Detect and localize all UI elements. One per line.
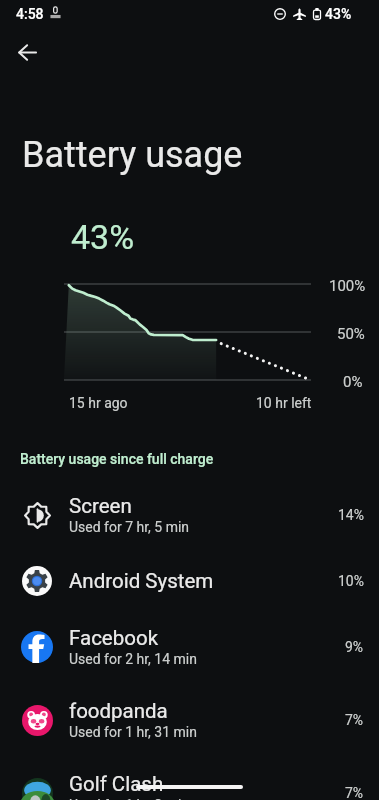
- staticText: 4:58: [16, 6, 44, 22]
- staticText: 43%: [71, 217, 135, 257]
- button[interactable]: foodpanda: [0, 683, 379, 756]
- staticText: 43%: [325, 6, 352, 22]
- staticText: Used for 1 hr, 2 min: [69, 797, 190, 800]
- staticText: 10%: [338, 573, 364, 589]
- staticText: Used for 7 hr, 5 min: [69, 519, 190, 535]
- staticText: 0%: [343, 373, 363, 391]
- button[interactable]: Facebook: [0, 610, 379, 683]
- staticText: 7%: [345, 712, 364, 728]
- staticText: 50%: [337, 325, 365, 343]
- staticText: 9%: [345, 639, 364, 655]
- staticText: Battery usage: [22, 134, 243, 176]
- staticText: 14%: [338, 507, 364, 523]
- staticText: Facebook: [69, 626, 159, 650]
- staticText: Golf Clash: [69, 772, 164, 796]
- staticText: Used for 2 hr, 14 min: [69, 651, 197, 667]
- staticText: 10 hr left: [256, 395, 312, 411]
- staticText: 100%: [329, 277, 366, 295]
- staticText: Screen: [69, 494, 132, 518]
- staticText: 15 hr ago: [69, 395, 128, 411]
- staticText: Used for 1 hr, 31 min: [69, 724, 197, 740]
- button[interactable]: Android System: [0, 551, 379, 610]
- button[interactable]: Back: [5, 30, 49, 74]
- staticText: 7%: [345, 785, 364, 800]
- button[interactable]: Screen: [0, 478, 379, 551]
- button[interactable]: Golf Clash: [0, 756, 379, 800]
- staticText: Battery usage since full charge: [20, 451, 214, 467]
- staticText: foodpanda: [69, 699, 168, 723]
- staticText: Android System: [69, 569, 214, 593]
